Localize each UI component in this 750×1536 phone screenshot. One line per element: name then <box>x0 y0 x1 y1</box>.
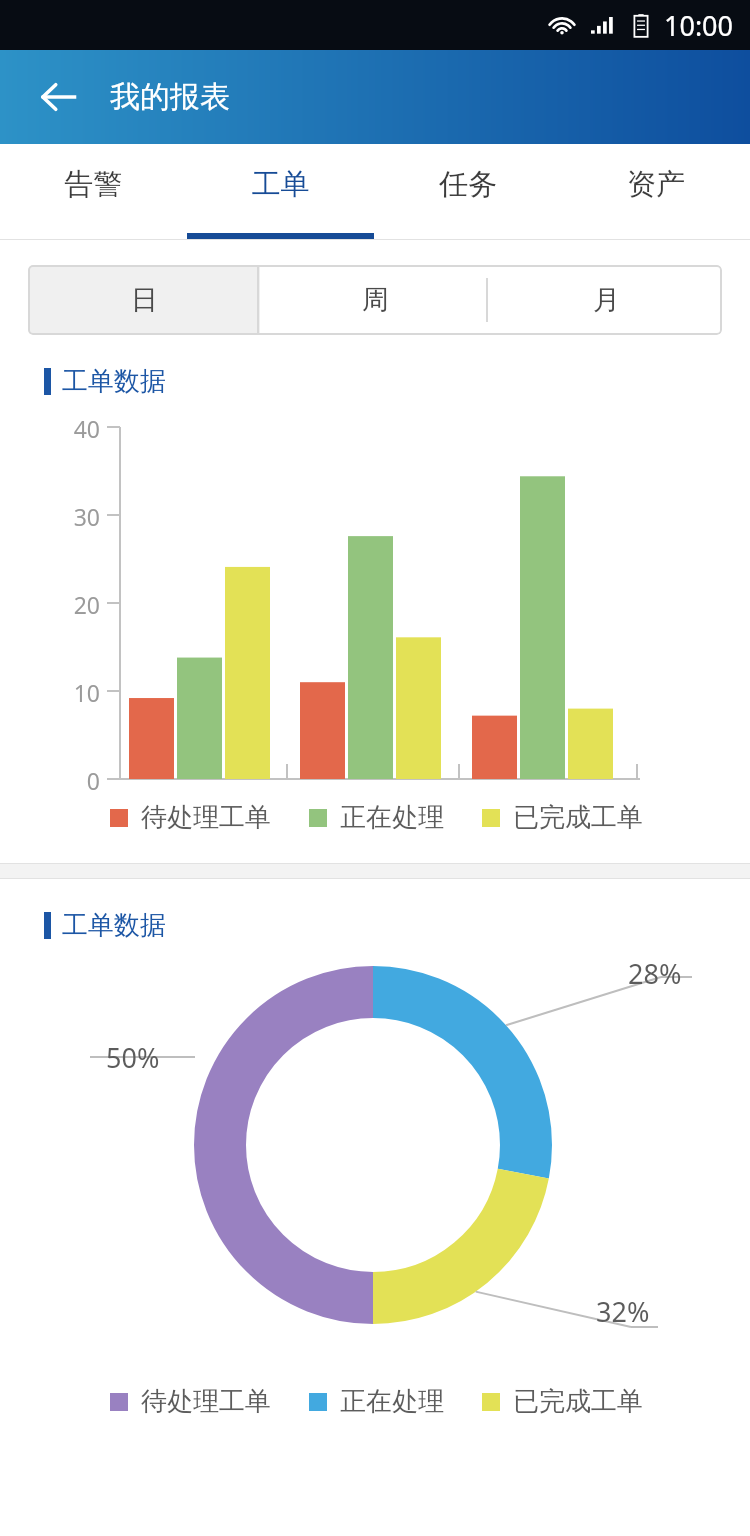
staticText: 周 <box>362 283 389 317</box>
staticText: 0 <box>0 765 100 796</box>
button[interactable]: 资产 <box>562 144 750 239</box>
button[interactable]: 待处理工单 <box>110 801 271 834</box>
staticText: 工单数据 <box>62 365 166 398</box>
staticText: 任务 <box>374 166 562 203</box>
staticText: 告警 <box>0 166 187 203</box>
button[interactable]: Back <box>30 68 88 126</box>
staticText: 32% <box>596 1293 650 1330</box>
button[interactable]: 周 <box>260 265 491 335</box>
staticText: 30 <box>0 501 100 532</box>
staticText: 10 <box>0 677 100 708</box>
staticText: 10:00 <box>664 7 734 44</box>
button[interactable]: 已完成工单 <box>482 1385 643 1418</box>
staticText: 我的报表 <box>110 78 230 116</box>
button[interactable]: 告警 <box>0 144 187 239</box>
staticText: 20 <box>0 589 100 620</box>
staticText: 正在处理 <box>340 1385 444 1418</box>
button[interactable]: 月 <box>491 265 722 335</box>
staticText: 40 <box>0 413 100 444</box>
button[interactable]: 日 <box>28 265 260 335</box>
button[interactable]: 工单 <box>187 144 374 239</box>
staticText: 待处理工单 <box>141 1385 271 1418</box>
staticText: 工单数据 <box>62 909 166 942</box>
staticText: 28% <box>628 955 682 992</box>
button[interactable]: 已完成工单 <box>482 801 643 834</box>
staticText: 50% <box>106 1039 160 1076</box>
button[interactable]: 任务 <box>374 144 562 239</box>
staticText: 正在处理 <box>340 801 444 834</box>
button[interactable]: 待处理工单 <box>110 1385 271 1418</box>
staticText: 已完成工单 <box>513 801 643 834</box>
staticText: 月 <box>593 283 620 317</box>
staticText: 工单 <box>187 166 374 203</box>
staticText: 待处理工单 <box>141 801 271 834</box>
staticText: 资产 <box>562 166 750 203</box>
staticText: 日 <box>131 283 158 317</box>
button[interactable]: 正在处理 <box>309 801 444 834</box>
button[interactable]: 正在处理 <box>309 1385 444 1418</box>
staticText: 已完成工单 <box>513 1385 643 1418</box>
